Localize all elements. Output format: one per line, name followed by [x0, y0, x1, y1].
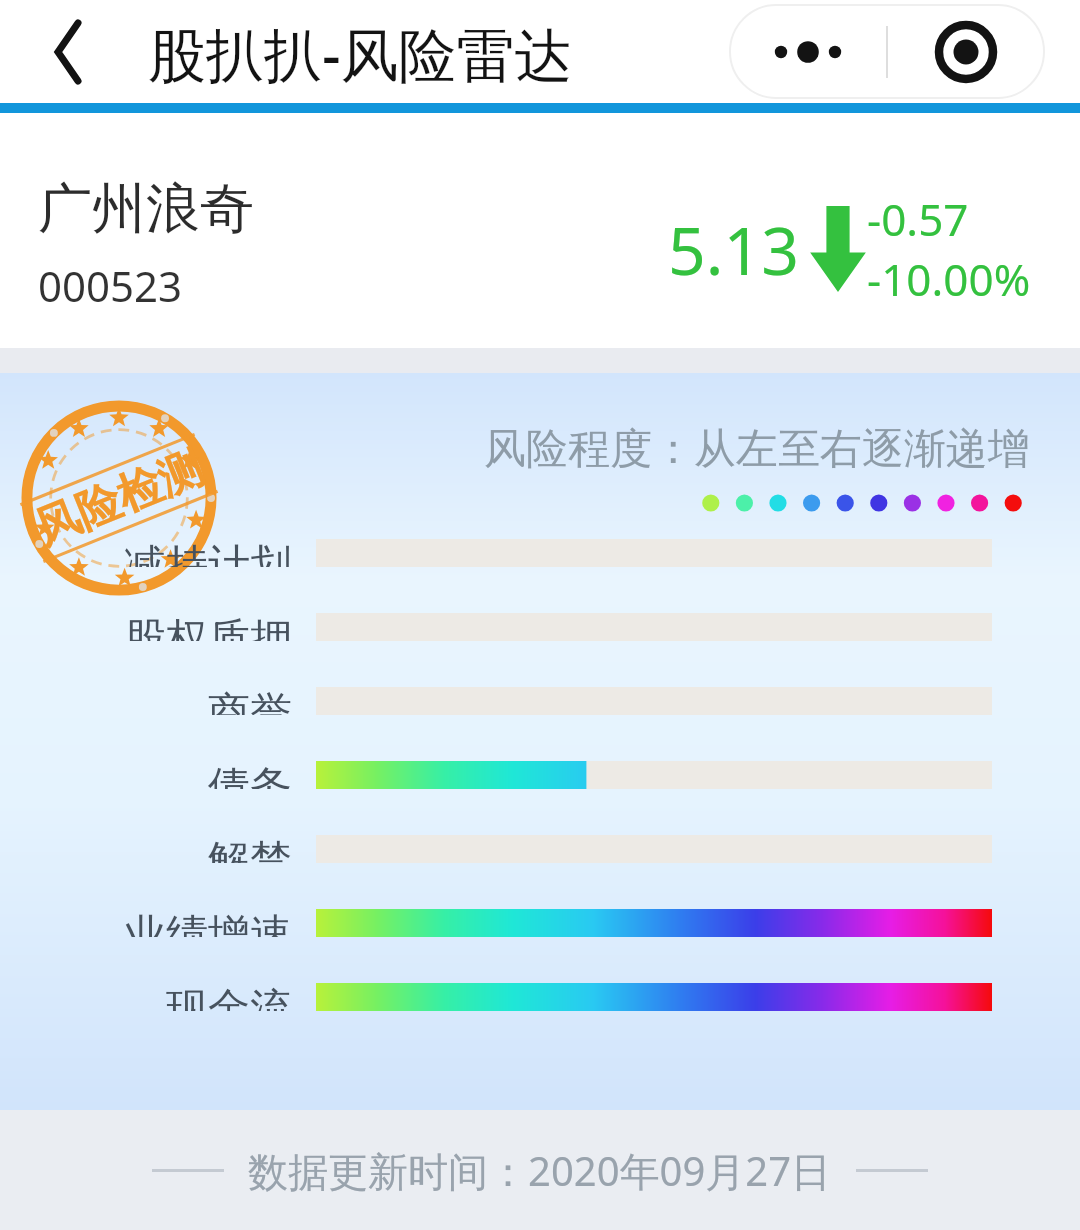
staticText: -0.57 — [867, 189, 969, 249]
button[interactable]: 解禁 — [0, 835, 1080, 863]
button[interactable]: 商誉 — [0, 687, 1080, 715]
staticText: 风险检测 — [27, 440, 211, 557]
staticText: 减持计划 — [124, 539, 292, 567]
staticText: 股扒扒-风险雷达 — [148, 14, 573, 93]
staticText: -10.00% — [867, 249, 1031, 309]
staticText: 数据更新时间：2020年09月27日 — [248, 1143, 832, 1198]
staticText: 债务 — [208, 761, 292, 789]
button[interactable]: 返回 — [28, 12, 108, 92]
button[interactable]: 股权质押 — [0, 613, 1080, 641]
staticText: 5.13 — [668, 204, 799, 294]
button[interactable]: 业绩增速 — [0, 909, 1080, 937]
staticText: 现金流 — [166, 983, 292, 1011]
button[interactable]: 债务 — [0, 761, 1080, 789]
button[interactable]: 更多 — [730, 5, 886, 98]
staticText: 解禁 — [208, 835, 292, 863]
staticText: 风险程度：从左至右逐渐递增 — [484, 423, 1030, 476]
staticText: 广州浪奇 — [38, 175, 254, 243]
staticText: 业绩增速 — [124, 909, 292, 937]
staticText: 商誉 — [208, 687, 292, 715]
button[interactable]: 关闭 — [888, 5, 1044, 98]
staticText: 股权质押 — [124, 613, 292, 641]
button[interactable]: 现金流 — [0, 983, 1080, 1011]
staticText: 000523 — [38, 257, 183, 314]
button[interactable]: 减持计划 — [0, 539, 1080, 567]
